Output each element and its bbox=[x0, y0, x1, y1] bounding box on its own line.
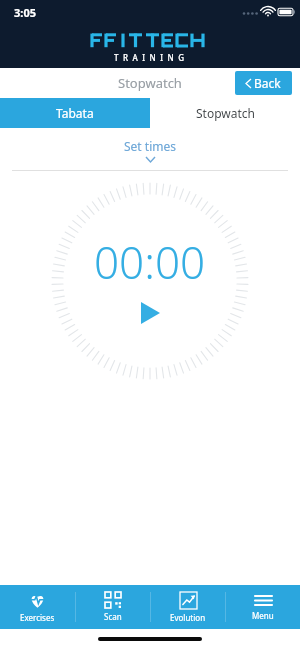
staticText: Stopwatch bbox=[196, 105, 255, 121]
staticText: Stopwatch bbox=[118, 74, 182, 92]
button[interactable]: Set times bbox=[0, 128, 300, 171]
button[interactable]: Start timer bbox=[133, 296, 167, 330]
staticText: Back bbox=[254, 75, 281, 91]
button[interactable]: Scan bbox=[76, 585, 150, 629]
button[interactable]: Back bbox=[235, 71, 292, 95]
button[interactable]: Stopwatch bbox=[150, 98, 300, 128]
staticText: Exercises bbox=[20, 612, 55, 623]
staticText: T R A I N I N G bbox=[114, 52, 186, 63]
staticText: Evolution bbox=[170, 612, 206, 623]
staticText: 3:05 bbox=[14, 5, 36, 20]
staticText: 00:00 bbox=[94, 232, 206, 292]
staticText: Tabata bbox=[56, 105, 94, 121]
staticText: Scan bbox=[104, 611, 122, 622]
button[interactable]: Evolution bbox=[151, 585, 225, 629]
button[interactable]: Exercises bbox=[0, 585, 75, 629]
staticText: Set times bbox=[124, 138, 176, 154]
button[interactable]: Menu bbox=[226, 585, 300, 629]
staticText: Menu bbox=[252, 610, 274, 621]
button[interactable]: Tabata bbox=[0, 98, 150, 128]
